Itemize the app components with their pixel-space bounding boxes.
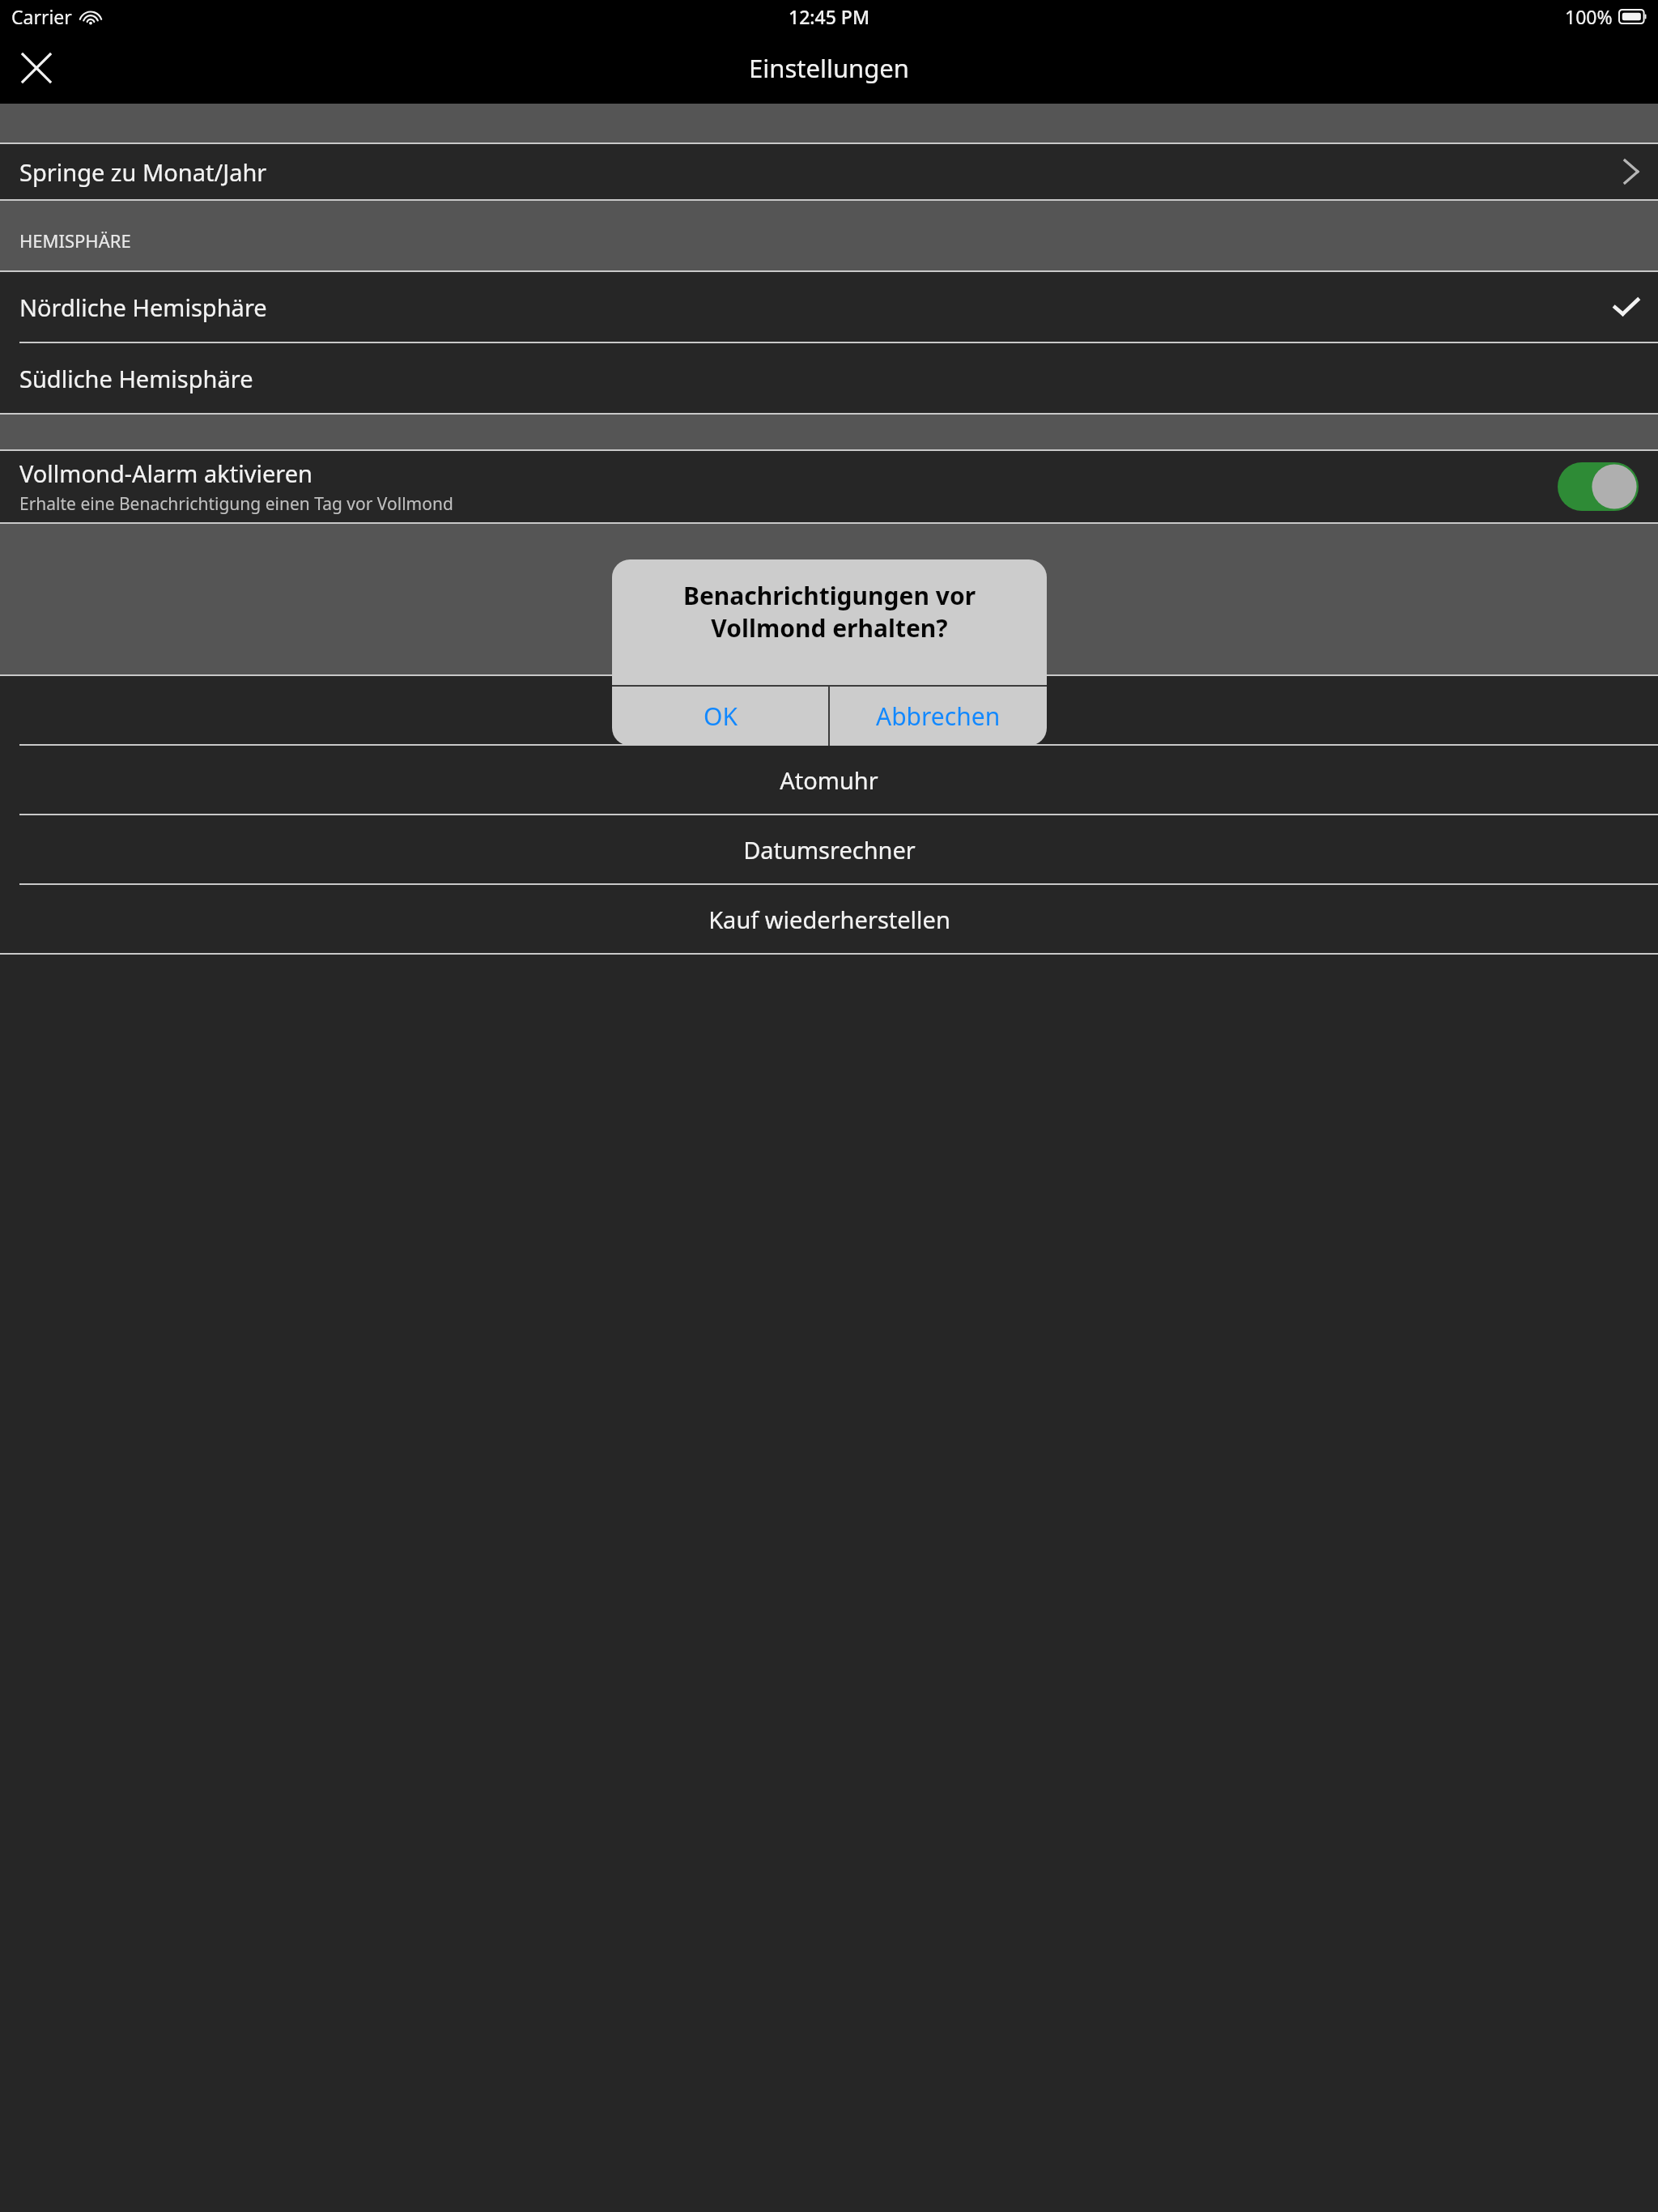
staticText: Einstellungen: [749, 51, 909, 85]
staticText: Atomuhr: [780, 764, 878, 796]
staticText: 100%: [1565, 4, 1613, 29]
staticText: Carrier: [11, 4, 72, 29]
button[interactable]: Nördliche Hemisphäre: [0, 272, 1658, 342]
button[interactable]: Kauf wiederherstellen: [0, 885, 1658, 953]
staticText: Benachrichtigungen vor Vollmond erhalten…: [633, 579, 1026, 644]
staticText: 12:45 PM: [789, 4, 870, 29]
staticText: HEMISPHÄRE: [19, 228, 131, 253]
button[interactable]: Datumsrechner: [0, 815, 1658, 883]
button[interactable]: Abbrechen: [830, 687, 1047, 746]
button[interactable]: Vollmond-Alarm aktivieren: [0, 451, 1658, 522]
staticText: Erhalte eine Benachrichtigung einen Tag …: [19, 492, 453, 516]
staticText: Springe zu Monat/Jahr: [19, 156, 267, 188]
staticText: OK: [704, 700, 738, 733]
staticText: Kauf wiederherstellen: [708, 904, 950, 935]
button[interactable]: Diese App bewerten: [0, 676, 1658, 744]
button[interactable]: Springe zu Monat/Jahr: [0, 144, 1658, 199]
button[interactable]: Südliche Hemisphäre: [0, 343, 1658, 413]
staticText: Diese App bewerten: [718, 695, 941, 726]
button[interactable]: Atomuhr: [0, 746, 1658, 814]
staticText: Datumsrechner: [743, 834, 916, 866]
button[interactable]: OK: [612, 687, 828, 746]
button[interactable]: Vollmond-Alarm umschalten: [1558, 462, 1639, 511]
staticText: Vollmond-Alarm aktivieren: [19, 457, 312, 489]
button[interactable]: Schließen: [0, 32, 73, 104]
staticText: Nördliche Hemisphäre: [19, 291, 267, 323]
staticText: Abbrechen: [876, 700, 1001, 733]
staticText: Südliche Hemisphäre: [19, 363, 253, 394]
